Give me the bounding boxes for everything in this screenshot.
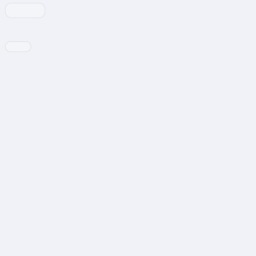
button[interactable]: Message <box>5 2 46 18</box>
button[interactable]: Reply <box>5 41 32 52</box>
